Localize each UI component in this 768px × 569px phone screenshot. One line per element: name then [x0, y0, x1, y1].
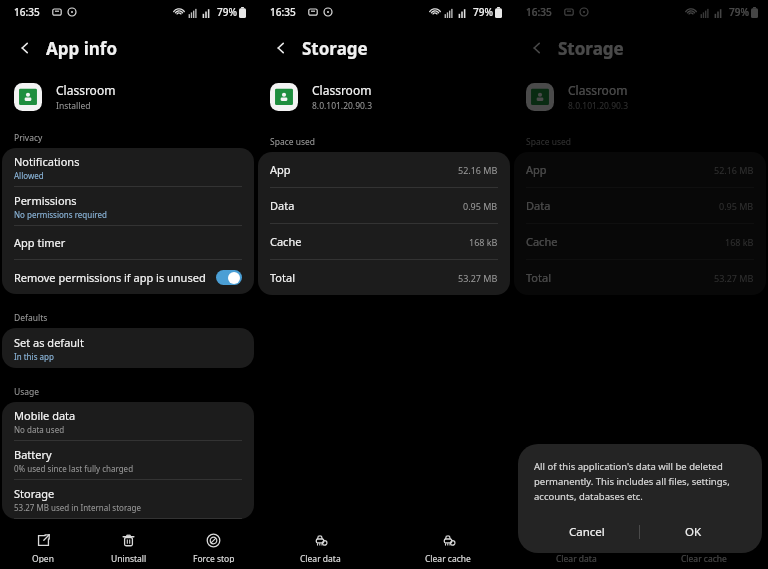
- button[interactable]: Clear cache: [384, 527, 512, 569]
- staticText: No permissions required: [14, 209, 107, 220]
- staticText: App: [526, 162, 547, 177]
- staticText: All of this application's data will be d…: [534, 460, 746, 503]
- staticText: 0% used since last fully charged: [14, 463, 134, 474]
- button[interactable]: Clear cache: [640, 527, 768, 569]
- staticText: No data used: [14, 424, 65, 435]
- staticText: Force stop: [193, 553, 235, 563]
- button[interactable]: Cache: [258, 224, 510, 259]
- staticText: Storage: [302, 37, 368, 60]
- staticText: Classroom: [568, 82, 628, 98]
- staticText: 53.27 MB: [458, 272, 498, 284]
- staticText: OK: [685, 524, 702, 540]
- staticText: 52.16 MB: [458, 164, 498, 176]
- button[interactable]: Back: [266, 33, 296, 63]
- staticText: 16:35: [270, 5, 296, 19]
- staticText: Cache: [270, 234, 302, 249]
- staticText: Classroom: [56, 82, 116, 98]
- staticText: In this app: [14, 351, 54, 362]
- button[interactable]: Uninstall: [86, 527, 171, 569]
- staticText: Defaults: [14, 312, 48, 324]
- staticText: App: [270, 162, 291, 177]
- staticText: Cache: [526, 234, 558, 249]
- button[interactable]: Cache: [514, 224, 766, 259]
- staticText: 0.95 MB: [463, 200, 498, 212]
- staticText: Total: [526, 270, 551, 285]
- staticText: Open: [32, 553, 54, 563]
- staticText: 8.0.101.20.90.3: [312, 100, 373, 112]
- staticText: Storage: [558, 37, 624, 60]
- button[interactable]: Back: [522, 33, 552, 63]
- staticText: 79%: [217, 5, 237, 19]
- staticText: 52.16 MB: [714, 164, 754, 176]
- button[interactable]: Total: [258, 260, 510, 295]
- staticText: Clear data: [300, 553, 341, 563]
- staticText: 16:35: [14, 5, 40, 19]
- staticText: 168 kB: [469, 236, 498, 248]
- button[interactable]: Permissions: [2, 187, 254, 225]
- staticText: Installed: [56, 100, 91, 112]
- staticText: Cancel: [569, 524, 605, 540]
- button[interactable]: App: [258, 152, 510, 187]
- staticText: 0.95 MB: [719, 200, 754, 212]
- button[interactable]: Mobile data: [2, 402, 254, 440]
- staticText: Space used: [270, 136, 316, 148]
- button[interactable]: Force stop: [171, 527, 256, 569]
- staticText: App info: [46, 37, 118, 60]
- staticText: Data: [270, 198, 295, 213]
- staticText: Privacy: [14, 132, 43, 144]
- button[interactable]: Cancel: [534, 517, 639, 547]
- button[interactable]: Open: [0, 527, 86, 569]
- staticText: 79%: [473, 5, 493, 19]
- staticText: Classroom: [312, 82, 372, 98]
- button[interactable]: App timer: [2, 226, 254, 259]
- staticText: Uninstall: [111, 553, 147, 563]
- staticText: 53.27 MB used in Internal storage: [14, 502, 141, 513]
- button[interactable]: Total: [514, 260, 766, 295]
- button[interactable]: OK: [640, 517, 746, 547]
- button[interactable]: Battery: [2, 441, 254, 479]
- staticText: Space used: [526, 136, 572, 148]
- button[interactable]: Notifications: [2, 148, 254, 186]
- button[interactable]: Data: [514, 188, 766, 223]
- button[interactable]: Clear data: [512, 527, 640, 569]
- staticText: 8.0.101.20.90.3: [568, 100, 629, 112]
- staticText: Storage: [14, 486, 55, 501]
- staticText: Data: [526, 198, 551, 213]
- staticText: Clear cache: [425, 553, 471, 563]
- staticText: Notifications: [14, 154, 80, 169]
- staticText: Allowed: [14, 170, 44, 181]
- button[interactable]: Set as default: [2, 328, 254, 368]
- staticText: 168 kB: [725, 236, 754, 248]
- staticText: App timer: [14, 235, 66, 250]
- button[interactable]: Storage: [2, 480, 254, 518]
- button[interactable]: Clear data: [256, 527, 384, 569]
- staticText: 53.27 MB: [714, 272, 754, 284]
- staticText: Battery: [14, 447, 52, 462]
- button[interactable]: Data: [258, 188, 510, 223]
- staticText: Clear data: [556, 553, 597, 563]
- staticText: Clear cache: [681, 553, 727, 563]
- button[interactable]: App: [514, 152, 766, 187]
- staticText: Usage: [14, 386, 40, 398]
- staticText: Remove permissions if app is unused: [14, 270, 206, 285]
- staticText: 16:35: [526, 5, 552, 19]
- staticText: Set as default: [14, 335, 84, 350]
- staticText: 79%: [729, 5, 749, 19]
- button[interactable]: Back: [10, 33, 40, 63]
- button[interactable]: Remove permissions if app is unused: [2, 260, 254, 294]
- staticText: Permissions: [14, 193, 77, 208]
- staticText: Mobile data: [14, 408, 76, 423]
- staticText: Total: [270, 270, 295, 285]
